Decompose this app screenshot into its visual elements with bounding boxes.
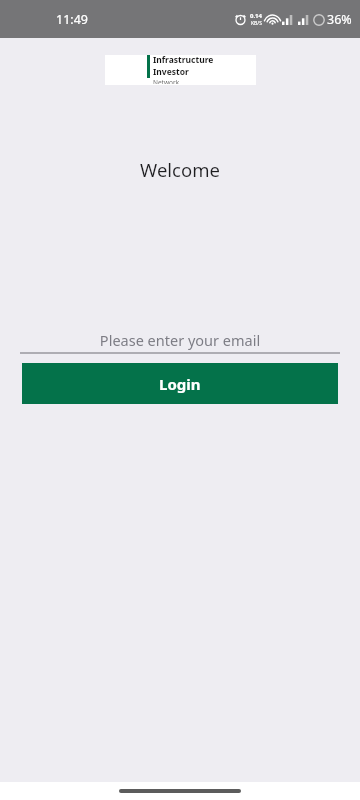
staticText: KB/S (251, 20, 262, 27)
staticText: Welcome (0, 157, 360, 182)
staticText: Network (153, 78, 180, 84)
staticText: 11:49 (56, 11, 88, 28)
staticText: Investor (153, 66, 189, 78)
staticText: Infrastructure (153, 54, 214, 66)
button[interactable]: Please enter your email (0, 330, 360, 354)
staticText: 0.14 (250, 12, 262, 20)
staticText: Login (159, 374, 201, 394)
staticText: 36% (327, 11, 352, 28)
button[interactable]: Login (22, 363, 338, 404)
staticText: Please enter your email (0, 330, 360, 350)
